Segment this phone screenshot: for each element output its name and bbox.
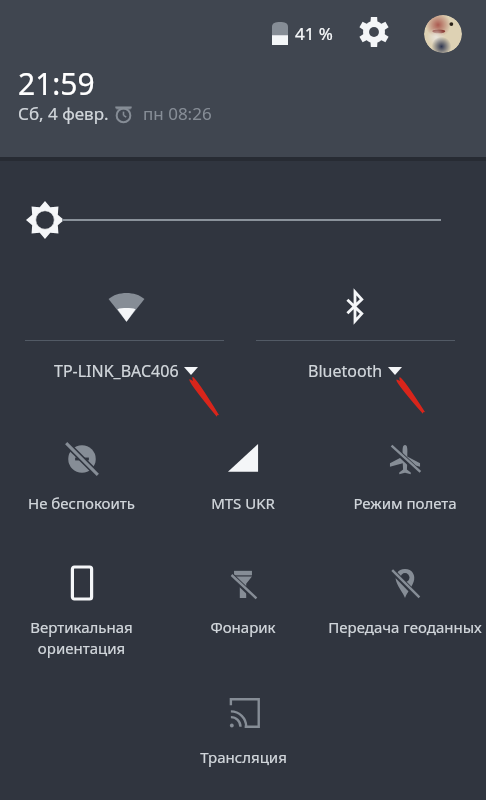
button[interactable]: User account: [424, 15, 462, 53]
staticText: MTS UKR: [211, 493, 275, 513]
staticText: Трансляция: [200, 747, 287, 767]
staticText: 21:59: [18, 63, 95, 104]
staticText: TP-LINK_BAC406: [54, 360, 179, 382]
button[interactable]: Settings: [354, 12, 394, 52]
staticText: Вертикальная ориентация: [30, 617, 133, 659]
button[interactable]: Передача геоданных: [324, 561, 486, 669]
staticText: Bluetooth: [308, 360, 383, 382]
staticText: Не беспокоить: [28, 493, 135, 513]
staticText: Режим полета: [353, 493, 457, 513]
button[interactable]: TP-LINK_BAC406: [25, 352, 224, 390]
button[interactable]: Не беспокоить: [0, 437, 162, 545]
staticText: Сб, 4 февр.: [18, 102, 109, 125]
button[interactable]: Bluetooth: [256, 270, 455, 340]
staticText: Фонарик: [210, 617, 276, 637]
button[interactable]: Трансляция: [162, 691, 324, 799]
button[interactable]: Фонарик: [162, 561, 324, 669]
staticText: пн 08:26: [143, 102, 212, 125]
staticText: 41 %: [295, 22, 333, 45]
button[interactable]: Режим полета: [324, 437, 486, 545]
button[interactable]: MTS UKR: [162, 437, 324, 545]
button[interactable]: Bluetooth: [256, 352, 455, 390]
button[interactable]: Вертикальная ориентация: [0, 561, 162, 669]
button[interactable]: Brightness: [16, 190, 471, 250]
button[interactable]: Wi-Fi: [25, 270, 224, 340]
staticText: Передача геоданных: [328, 617, 482, 637]
